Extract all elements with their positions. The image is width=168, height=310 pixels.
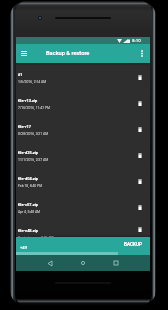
button[interactable]: Delete backup xyxy=(133,89,147,115)
staticText: file-d04.zip xyxy=(18,176,39,181)
staticText: +49 xyxy=(20,245,28,250)
button[interactable]: file-c07.zip xyxy=(16,193,150,219)
staticText: #1 xyxy=(18,72,23,77)
staticText: Apr 4, 5:48 AM xyxy=(18,210,41,214)
button[interactable]: Recent apps xyxy=(102,255,130,271)
button[interactable]: Navigation menu xyxy=(16,44,32,63)
button[interactable]: More options xyxy=(134,44,150,63)
button[interactable]: file-r13.zip xyxy=(16,89,150,115)
button[interactable]: Delete backup xyxy=(133,193,147,219)
staticText: 8/28/2016, 3:21 AM xyxy=(18,132,49,136)
staticText: file-c07.zip xyxy=(18,202,38,207)
staticText: file-r17 xyxy=(18,124,31,129)
button[interactable]: Home xyxy=(69,255,97,271)
button[interactable]: file-d25.zip xyxy=(16,141,150,167)
staticText: Backup & restore xyxy=(46,50,90,57)
button[interactable]: Delete backup xyxy=(133,63,147,89)
button[interactable]: Delete backup xyxy=(133,167,147,193)
button[interactable]: file-d04.zip xyxy=(16,167,150,193)
button[interactable]: file-e48.zip xyxy=(16,219,150,237)
staticText: Feb 18, 8:40 PM xyxy=(18,184,43,188)
button[interactable]: Delete backup xyxy=(133,141,147,167)
staticText: file-d25.zip xyxy=(18,150,39,155)
staticText: 8:10 xyxy=(132,38,141,43)
button[interactable]: Back xyxy=(36,255,64,271)
button[interactable]: Delete backup xyxy=(133,219,147,237)
staticText: 11/1/2016, 2:37 AM xyxy=(18,158,49,162)
button[interactable]: Delete backup xyxy=(133,115,147,141)
staticText: 7/16/2016, 11:47 PM xyxy=(18,106,51,110)
button[interactable]: #1 xyxy=(16,63,150,89)
staticText: 1/6/2016, 2:14 AM xyxy=(18,80,47,84)
staticText: BACKUP xyxy=(124,242,142,247)
button[interactable]: file-r17 xyxy=(16,115,150,141)
staticText: file-r13.zip xyxy=(18,98,38,103)
staticText: 7 minutes ago, 2:36 AM xyxy=(18,236,54,240)
button[interactable]: BACKUP xyxy=(122,240,144,249)
staticText: file-e48.zip xyxy=(18,228,38,233)
